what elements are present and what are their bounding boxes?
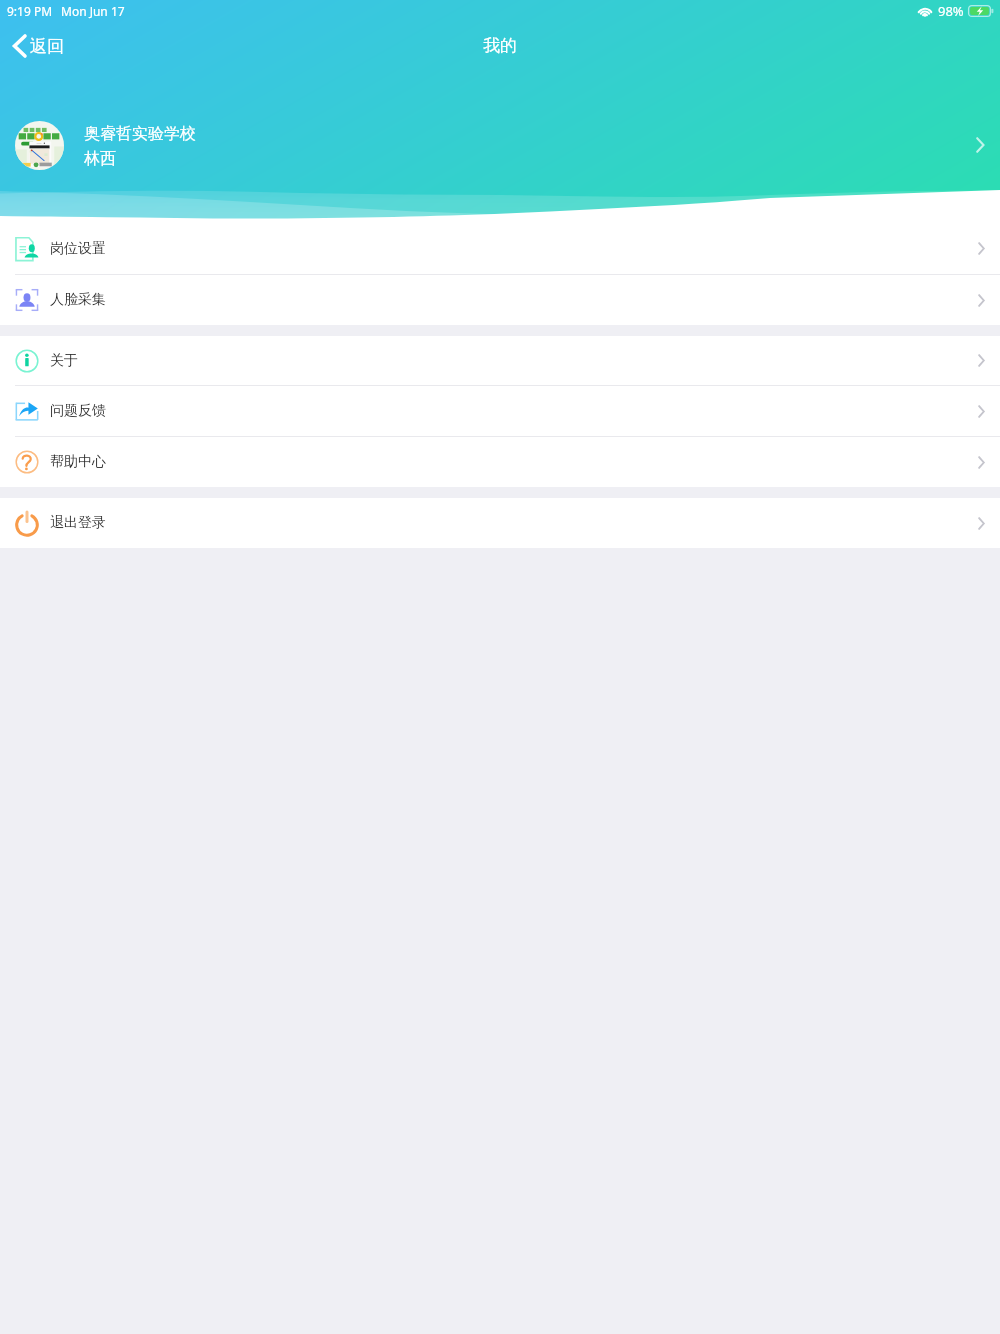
- button[interactable]: 岗位设置: [0, 223, 1000, 274]
- staticText: 林西: [84, 149, 116, 169]
- staticText: 退出登录: [50, 514, 106, 532]
- staticText: 关于: [50, 352, 78, 370]
- button[interactable]: Back: [0, 28, 74, 64]
- staticText: 帮助中心: [50, 453, 106, 471]
- button[interactable]: 问题反馈: [0, 386, 1000, 436]
- staticText: 我的: [483, 35, 517, 56]
- other: Profile details: [976, 137, 985, 153]
- staticText: 返回: [30, 36, 64, 57]
- button[interactable]: 关于: [0, 336, 1000, 385]
- staticText: 98%: [938, 2, 964, 20]
- button[interactable]: 人脸采集: [0, 275, 1000, 325]
- staticText: 奥睿哲实验学校: [84, 124, 196, 144]
- button[interactable]: 奥睿哲实验学校: [0, 106, 1000, 184]
- staticText: Mon Jun 17: [61, 3, 125, 19]
- other: Back: [12, 34, 27, 58]
- staticText: 问题反馈: [50, 402, 106, 420]
- button[interactable]: 帮助中心: [0, 437, 1000, 487]
- staticText: 9:19 PM: [7, 3, 53, 19]
- staticText: 岗位设置: [50, 240, 106, 258]
- staticText: 人脸采集: [50, 291, 106, 309]
- button[interactable]: 退出登录: [0, 498, 1000, 548]
